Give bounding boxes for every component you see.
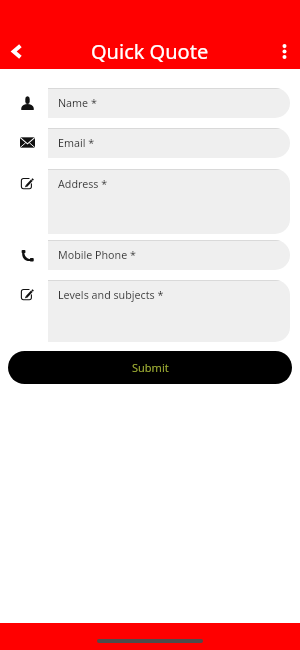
button[interactable]: Email * xyxy=(48,128,290,158)
button[interactable]: Back xyxy=(2,37,30,65)
staticText: Name * xyxy=(58,96,97,111)
staticText: Levels and subjects * xyxy=(58,288,164,303)
button[interactable]: Name * xyxy=(48,88,290,118)
staticText: Address * xyxy=(58,177,108,192)
button[interactable]: Levels and subjects * xyxy=(48,280,290,342)
button[interactable]: Mobile Phone * xyxy=(48,240,290,270)
staticText: Email * xyxy=(58,136,95,151)
button[interactable]: More options xyxy=(270,37,298,65)
staticText: Submit xyxy=(132,360,169,375)
button[interactable]: Submit xyxy=(8,351,292,384)
button[interactable]: Address * xyxy=(48,169,290,234)
staticText: Mobile Phone * xyxy=(58,248,136,263)
staticText: Quick Quote xyxy=(91,38,209,65)
